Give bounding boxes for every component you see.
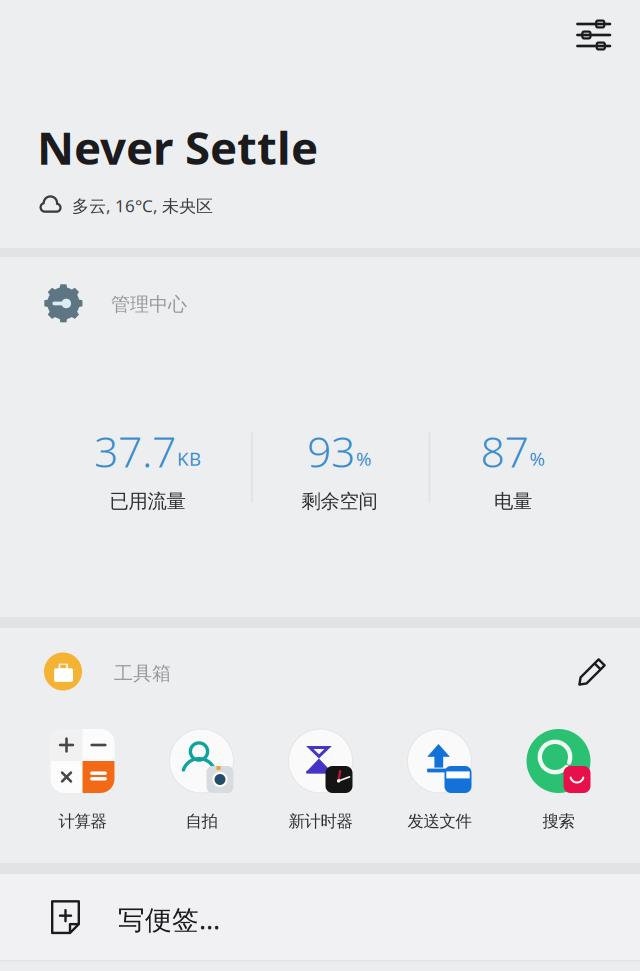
staticText: 剩余空间 xyxy=(301,489,377,513)
staticText: 工具箱 xyxy=(114,661,171,685)
button[interactable]: 87 xyxy=(428,422,598,513)
button[interactable]: 93 xyxy=(251,422,428,513)
staticText: 写便签... xyxy=(118,901,220,937)
staticText: 发送文件 xyxy=(407,811,471,832)
button[interactable]: 搜索 xyxy=(499,729,618,832)
staticText: % xyxy=(529,446,545,471)
staticText: 管理中心 xyxy=(111,292,187,316)
staticText: 93 xyxy=(307,422,355,480)
staticText: 搜索 xyxy=(542,811,574,832)
button[interactable]: 计算器 xyxy=(23,729,142,832)
staticText: 计算器 xyxy=(58,811,106,832)
staticText: % xyxy=(356,446,372,471)
button[interactable]: 新计时器 xyxy=(261,729,380,832)
button[interactable]: 管理中心 xyxy=(0,257,187,323)
button[interactable]: 37.7 xyxy=(44,422,251,513)
staticText: 37.7 xyxy=(94,422,176,480)
button[interactable]: 写便签... xyxy=(0,874,640,960)
staticText: KB xyxy=(177,446,201,471)
button[interactable]: Settings xyxy=(568,12,618,58)
staticText: Never Settle xyxy=(37,116,318,178)
staticText: 已用流量 xyxy=(109,489,185,513)
button[interactable]: 发送文件 xyxy=(380,729,499,832)
staticText: 87 xyxy=(480,422,528,480)
staticText: 自拍 xyxy=(185,811,217,832)
staticText: 电量 xyxy=(494,489,532,513)
staticText: 多云, 16°C, 未央区 xyxy=(72,194,213,217)
staticText: 新计时器 xyxy=(288,811,352,832)
button[interactable]: 自拍 xyxy=(142,729,261,832)
button[interactable]: 工具箱 xyxy=(44,651,171,689)
button[interactable]: Edit xyxy=(572,650,613,691)
